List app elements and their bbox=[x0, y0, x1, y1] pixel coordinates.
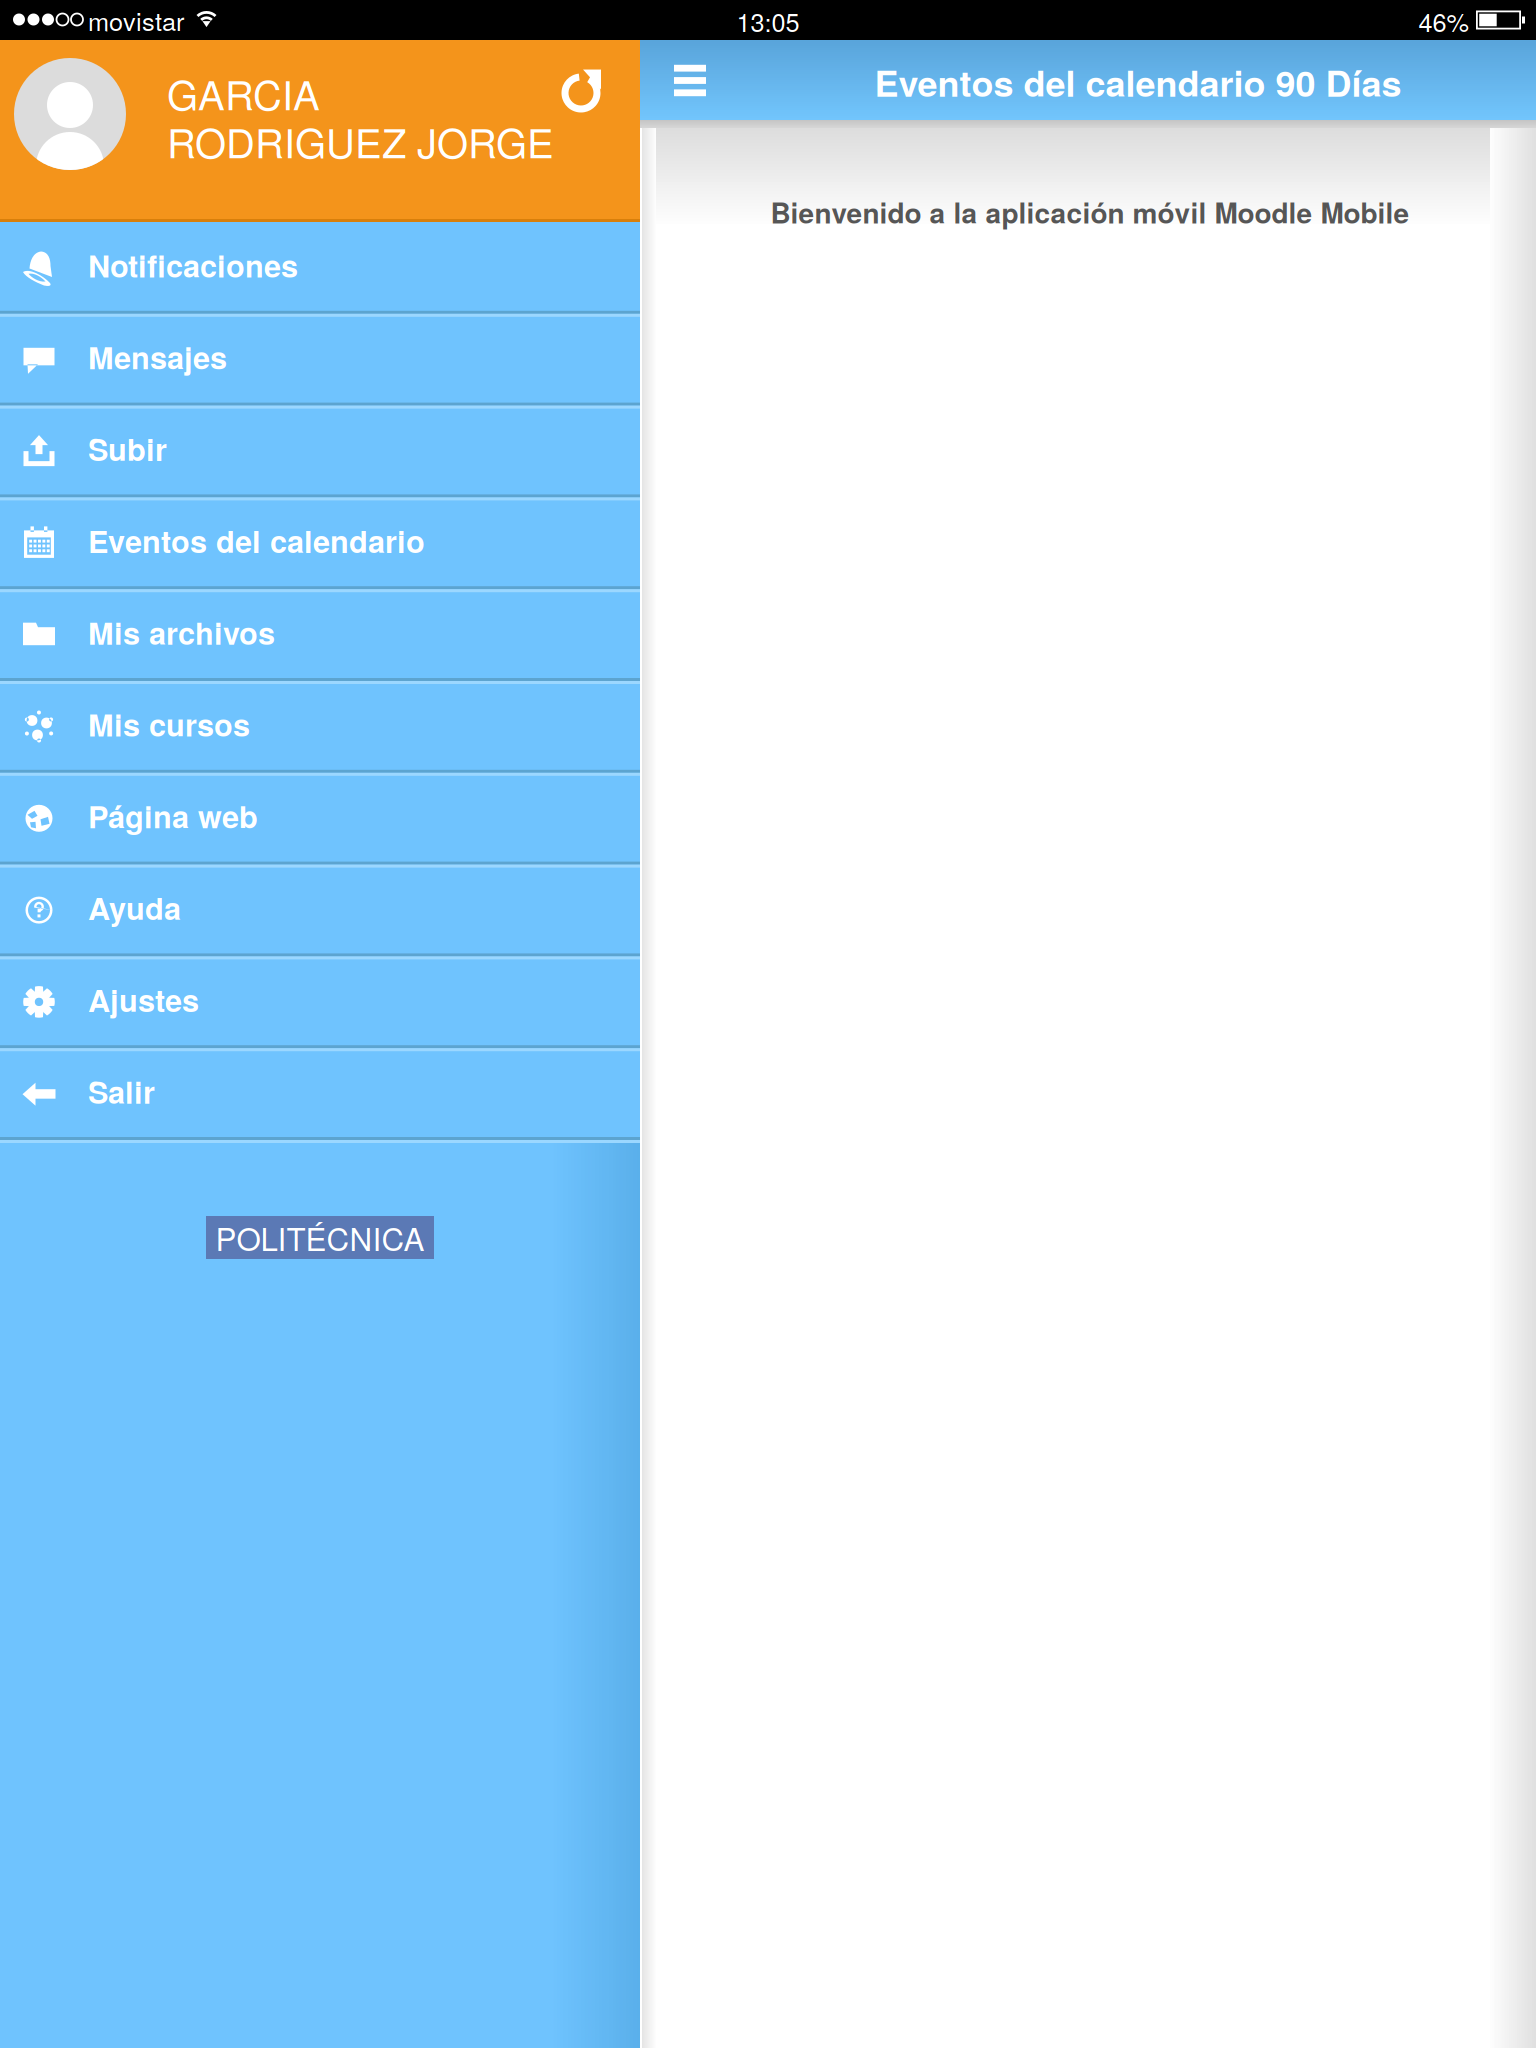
staticText: Salir bbox=[88, 1069, 155, 1113]
staticText: Ayuda bbox=[88, 886, 181, 929]
staticText: Subir bbox=[88, 427, 167, 470]
staticText: Mis cursos bbox=[88, 702, 250, 746]
button[interactable]: Refresh bbox=[553, 65, 609, 121]
button[interactable]: Notificaciones bbox=[0, 222, 640, 314]
staticText: Ajustes bbox=[88, 977, 199, 1021]
staticText: 13:05 bbox=[736, 3, 799, 39]
button[interactable]: Open menu bbox=[674, 65, 706, 96]
button[interactable]: Mis archivos bbox=[0, 589, 640, 681]
staticText: Página web bbox=[88, 794, 258, 838]
button[interactable]: Mensajes bbox=[0, 314, 640, 406]
button[interactable]: Ajustes bbox=[0, 956, 640, 1048]
button[interactable]: Página web bbox=[0, 773, 640, 865]
staticText: Eventos del calendario bbox=[88, 518, 425, 562]
button[interactable]: Subir bbox=[0, 406, 640, 497]
staticText: RODRIGUEZ JORGE bbox=[167, 112, 554, 170]
staticText: Bienvenido a la aplicación móvil Moodle … bbox=[770, 192, 1409, 232]
staticText: Notificaciones bbox=[88, 243, 298, 287]
staticText: movistar bbox=[88, 2, 184, 38]
staticText: Eventos del calendario 90 Días bbox=[874, 56, 1401, 108]
button[interactable]: Mis cursos bbox=[0, 681, 640, 773]
staticText: POLITÉCNICA bbox=[215, 1215, 424, 1260]
staticText: Mensajes bbox=[88, 335, 227, 379]
button[interactable]: Ayuda bbox=[0, 865, 640, 956]
staticText: GARCIA bbox=[167, 64, 320, 122]
button[interactable]: Eventos del calendario bbox=[0, 497, 640, 589]
staticText: Mis archivos bbox=[88, 610, 275, 654]
staticText: 46% bbox=[1418, 3, 1469, 39]
button[interactable]: Salir bbox=[0, 1048, 640, 1140]
